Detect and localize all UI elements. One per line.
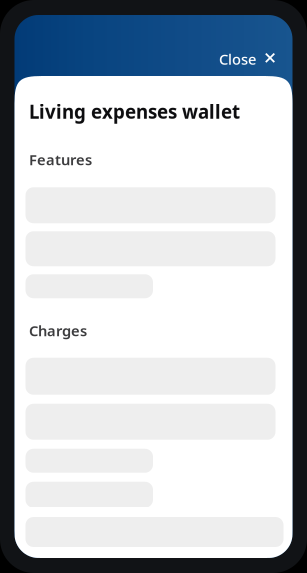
staticText: Close [219, 49, 256, 69]
staticText: Features [29, 150, 92, 169]
staticText: Charges [29, 321, 87, 340]
staticText: Living expenses wallet [29, 99, 240, 124]
button[interactable]: Close [211, 43, 283, 75]
